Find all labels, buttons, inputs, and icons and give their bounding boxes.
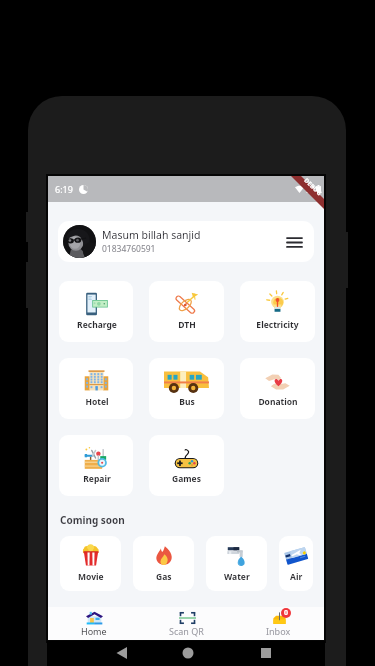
staticText: DEBUG	[302, 176, 324, 198]
button[interactable]: Gas	[133, 536, 194, 591]
staticText: Scan QR	[169, 625, 204, 637]
staticText: DTH	[178, 319, 196, 331]
staticText: Air	[290, 571, 303, 583]
button[interactable]: Recharge	[59, 281, 133, 342]
staticText: Movie	[78, 571, 104, 583]
staticText: Bus	[179, 396, 195, 408]
staticText: 0	[284, 608, 289, 618]
staticText: 01834760591	[102, 243, 156, 255]
staticText: Home	[81, 625, 107, 637]
button[interactable]: Water	[206, 536, 267, 591]
button[interactable]: Movie	[60, 536, 121, 591]
staticText: Electricity	[256, 319, 299, 331]
staticText: Gas	[156, 571, 172, 583]
staticText: Hotel	[85, 396, 109, 408]
button[interactable]: Games	[149, 435, 224, 496]
button[interactable]: Electricity	[240, 281, 315, 342]
button[interactable]: Home	[48, 607, 140, 640]
staticText: Recharge	[77, 319, 117, 331]
staticText: Coming soon	[60, 513, 125, 527]
staticText: Repair	[83, 473, 111, 485]
staticText: Water	[224, 571, 250, 583]
staticText: Inbox	[266, 625, 291, 637]
button[interactable]: Donation	[240, 358, 315, 419]
staticText: Games	[172, 473, 201, 485]
staticText: Donation	[258, 396, 298, 408]
button[interactable]: Scan QR	[140, 607, 232, 640]
staticText: 6:19	[55, 183, 73, 195]
button[interactable]: Repair	[59, 435, 133, 496]
button[interactable]: Masum billah sanjid	[58, 221, 314, 262]
button[interactable]: Air	[279, 536, 313, 591]
staticText: Masum billah sanjid	[102, 228, 201, 242]
button[interactable]: DTH	[149, 281, 224, 342]
button[interactable]: Menu	[282, 230, 306, 254]
button[interactable]: Hotel	[59, 358, 133, 419]
button[interactable]: 0	[232, 607, 324, 640]
button[interactable]: Bus	[149, 358, 224, 419]
